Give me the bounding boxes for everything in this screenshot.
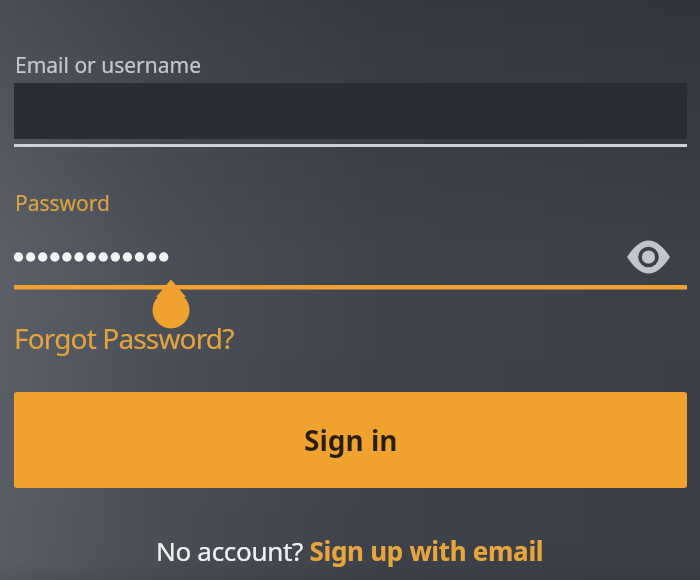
staticText: Sign in <box>304 421 398 459</box>
button[interactable]: Forgot Password? <box>14 319 234 357</box>
staticText: Password <box>15 189 110 218</box>
button[interactable]: Sign in <box>14 392 687 488</box>
staticText: Email or username <box>15 51 202 80</box>
button[interactable]: No account? Sign up with email <box>156 533 544 568</box>
